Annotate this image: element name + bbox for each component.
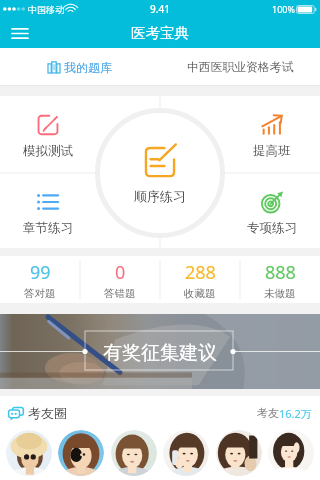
button[interactable]: 有奖征集建议 [0, 314, 320, 389]
staticText: 考友 [257, 406, 279, 420]
staticText: 99 [30, 260, 51, 285]
button[interactable]: 考友圈 [8, 396, 312, 430]
staticText: 医考宝典 [131, 24, 189, 42]
staticText: 9.41 [150, 2, 170, 16]
button[interactable]: 顺序练习 [95, 108, 225, 238]
button[interactable]: 288 [160, 256, 240, 303]
staticText: 考友圈 [28, 405, 67, 421]
button[interactable]: 888 [240, 256, 320, 303]
button[interactable]: 0 [80, 256, 160, 303]
button[interactable]: 中西医职业资格考试 [160, 48, 320, 86]
staticText: 未做题 [264, 287, 296, 300]
staticText: 中西医职业资格考试 [187, 60, 294, 75]
staticText: 我的题库 [64, 60, 112, 75]
staticText: 16.2万 [279, 406, 312, 421]
staticText: 答错题 [104, 287, 136, 300]
staticText: 章节练习 [23, 220, 73, 236]
staticText: 100% [272, 3, 295, 15]
staticText: 288 [185, 260, 216, 285]
button[interactable]: Menu [0, 18, 40, 48]
staticText: 0 [115, 260, 126, 285]
button[interactable]: Friend avatar [111, 430, 157, 476]
button[interactable]: Friend avatar [6, 430, 52, 476]
button[interactable]: 章节练习 [6, 191, 90, 236]
button[interactable]: 我的题库 [0, 48, 160, 86]
staticText: 顺序练习 [134, 188, 186, 204]
button[interactable]: Friend avatar [163, 430, 209, 476]
staticText: 模拟测试 [23, 143, 73, 159]
staticText: 888 [265, 260, 296, 285]
button[interactable]: Friend avatar [268, 430, 314, 476]
staticText: 答对题 [24, 287, 56, 300]
button[interactable]: 99 [0, 256, 80, 303]
button[interactable]: Friend avatar [58, 430, 104, 476]
staticText: 专项练习 [247, 220, 297, 236]
button[interactable]: 专项练习 [230, 191, 314, 236]
button[interactable]: Friend avatar [216, 430, 262, 476]
staticText: 收藏题 [184, 287, 216, 300]
staticText: 有奖征集建议 [103, 341, 217, 365]
staticText: 中国移动 [28, 4, 64, 15]
button[interactable]: 模拟测试 [6, 114, 90, 159]
staticText: 提高班 [253, 143, 291, 159]
button[interactable]: 提高班 [230, 114, 314, 159]
